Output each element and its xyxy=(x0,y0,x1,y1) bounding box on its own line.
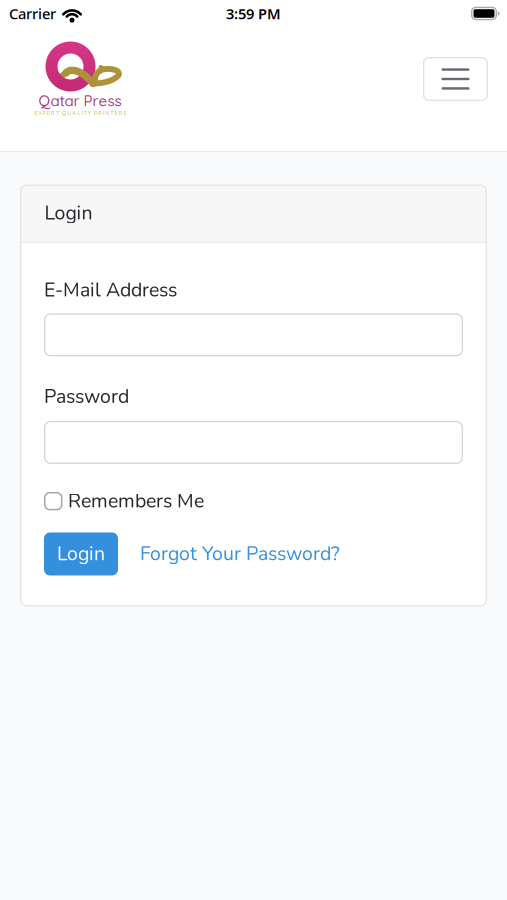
staticText: 3:59 PM xyxy=(226,4,281,23)
staticText: Login xyxy=(57,541,105,567)
button[interactable]: Forgot Your Password? xyxy=(140,541,340,567)
staticText: Carrier xyxy=(9,4,56,23)
button[interactable]: Toggle navigation xyxy=(423,57,488,101)
staticText: E-Mail Address xyxy=(44,277,177,303)
button[interactable]: E-Mail Address xyxy=(44,313,463,356)
staticText: Password xyxy=(44,383,129,410)
staticText: Forgot Your Password? xyxy=(140,541,340,567)
staticText: Qatar Press xyxy=(38,91,121,110)
staticText: Remembers Me xyxy=(68,488,204,514)
staticText: EXPERT QUALITY PRINTERS xyxy=(34,110,127,116)
button[interactable]: Login xyxy=(44,532,118,575)
button[interactable]: Remembers Me xyxy=(44,488,204,514)
staticText: Login xyxy=(44,200,92,226)
button[interactable]: Password xyxy=(44,421,463,464)
